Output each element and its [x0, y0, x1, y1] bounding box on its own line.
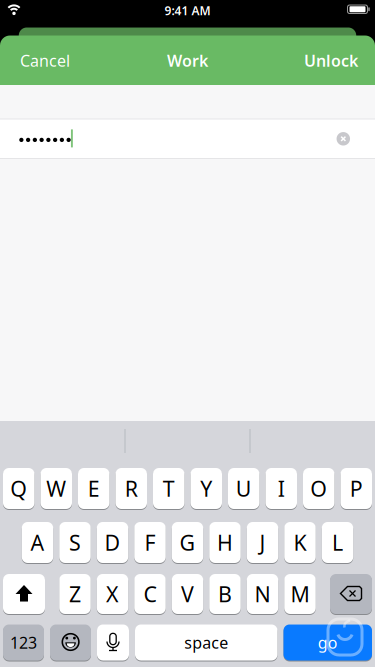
staticText: O — [310, 474, 327, 503]
staticText: Work — [167, 50, 208, 71]
staticText: G — [179, 528, 195, 557]
staticText: P — [350, 474, 363, 503]
button[interactable]: Delete — [330, 573, 372, 614]
button[interactable]: space — [135, 624, 277, 661]
staticText: D — [104, 528, 120, 557]
button[interactable]: Clear text — [337, 132, 350, 146]
button[interactable]: Y — [190, 467, 222, 509]
staticText: V — [181, 580, 194, 608]
button[interactable]: Unlock — [290, 38, 372, 82]
staticText: J — [259, 528, 265, 557]
button[interactable]: T — [153, 467, 184, 509]
button[interactable]: U — [228, 467, 259, 509]
button[interactable]: N — [247, 573, 278, 614]
staticText: Q — [10, 474, 27, 503]
button[interactable]: V — [172, 573, 203, 614]
button[interactable]: H — [209, 521, 241, 563]
button[interactable]: go — [283, 624, 372, 661]
button[interactable]: Z — [59, 573, 91, 614]
button[interactable]: D — [97, 521, 128, 563]
button[interactable]: I — [265, 467, 297, 509]
button[interactable]: G — [172, 521, 203, 563]
button[interactable]: Emoji — [50, 624, 91, 661]
staticText: T — [163, 474, 175, 503]
staticText: X — [106, 580, 119, 608]
staticText: A — [30, 528, 44, 557]
button[interactable]: 123 — [3, 624, 44, 661]
staticText: go — [318, 632, 338, 653]
button[interactable]: Q — [3, 467, 34, 509]
staticText: B — [218, 580, 232, 608]
button[interactable]: M — [284, 573, 316, 614]
button[interactable]: O — [303, 467, 334, 509]
staticText: R — [125, 474, 138, 503]
staticText: 9:41 AM — [164, 2, 210, 18]
button[interactable]: Cancel — [6, 38, 84, 82]
staticText: K — [293, 528, 306, 557]
button[interactable]: X — [97, 573, 128, 614]
staticText: E — [88, 474, 100, 503]
button[interactable]: A — [22, 521, 53, 563]
button[interactable]: B — [209, 573, 241, 614]
staticText: Z — [69, 580, 81, 608]
staticText: Cancel — [20, 50, 70, 71]
staticText: W — [46, 474, 66, 503]
staticText: I — [278, 474, 285, 503]
staticText: F — [144, 528, 155, 557]
staticText: S — [69, 528, 81, 557]
button[interactable]: L — [322, 521, 353, 563]
button[interactable]: E — [78, 467, 109, 509]
staticText: N — [254, 580, 270, 608]
button[interactable]: K — [284, 521, 316, 563]
staticText: U — [236, 474, 252, 503]
staticText: Y — [200, 474, 212, 503]
staticText: M — [290, 580, 309, 608]
staticText: 123 — [10, 632, 37, 653]
staticText: space — [184, 632, 228, 653]
staticText: Unlock — [304, 50, 358, 71]
button[interactable]: C — [134, 573, 166, 614]
button[interactable]: J — [247, 521, 278, 563]
button[interactable]: Dictate — [97, 624, 129, 661]
staticText: C — [143, 580, 156, 608]
button[interactable]: Shift — [3, 573, 45, 614]
staticText: L — [332, 528, 343, 557]
button[interactable]: S — [59, 521, 91, 563]
button[interactable]: F — [134, 521, 166, 563]
staticText: H — [217, 528, 233, 557]
button[interactable]: R — [115, 467, 147, 509]
button[interactable]: W — [40, 467, 72, 509]
button[interactable]: P — [340, 467, 372, 509]
